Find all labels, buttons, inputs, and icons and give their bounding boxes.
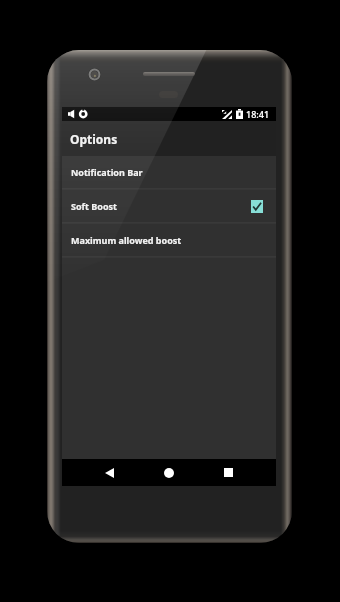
staticText: Options (70, 131, 118, 147)
button[interactable]: Recent apps (210, 459, 246, 486)
button[interactable]: Notification Bar (62, 156, 276, 188)
button[interactable]: Soft Boost (62, 190, 276, 222)
staticText: Notification Bar (71, 166, 143, 178)
button[interactable]: Maximum allowed boost (62, 224, 276, 256)
staticText: 18:41 (246, 108, 270, 120)
staticText: Maximum allowed boost (71, 234, 182, 246)
staticText: Soft Boost (71, 200, 117, 212)
button[interactable]: Home (150, 459, 188, 486)
button[interactable]: Back (91, 459, 127, 486)
